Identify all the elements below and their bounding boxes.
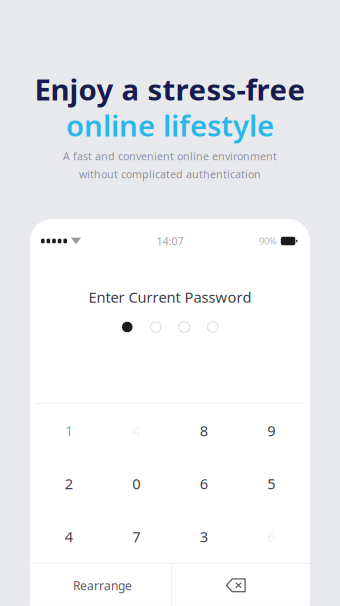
staticText: 2 (65, 474, 73, 493)
staticText: 7 (132, 527, 140, 546)
button[interactable]: 4 (35, 510, 102, 563)
staticText: 90% (259, 235, 277, 247)
staticText: 4 (65, 527, 73, 546)
button[interactable]: Rearrange (32, 564, 173, 606)
button[interactable]: 5 (237, 457, 305, 510)
button[interactable]: 3 (170, 510, 237, 563)
button[interactable]: Delete (167, 564, 305, 606)
staticText: 6 (200, 474, 208, 493)
button[interactable]: 1 (35, 404, 102, 457)
staticText: 14:07 (156, 234, 183, 248)
staticText: 0 (132, 474, 140, 493)
staticText: 9 (267, 421, 275, 440)
staticText: 4 (132, 421, 140, 440)
button[interactable]: 7 (102, 510, 170, 563)
staticText: 3 (200, 527, 208, 546)
button[interactable]: 2 (35, 457, 102, 510)
staticText: Enter Current Password (88, 287, 251, 307)
staticText: 6 (267, 527, 275, 546)
staticText: 8 (200, 421, 208, 440)
staticText: without complicated authentication (79, 167, 261, 181)
staticText: Rearrange (73, 577, 132, 593)
staticText: Enjoy a stress-free (34, 69, 305, 108)
staticText: 1 (65, 421, 73, 440)
button[interactable]: 6 (170, 457, 237, 510)
staticText: 5 (267, 474, 275, 493)
button[interactable]: 9 (237, 404, 305, 457)
button[interactable]: 8 (170, 404, 237, 457)
staticText: online lifestyle (66, 105, 274, 144)
button[interactable]: 0 (102, 457, 170, 510)
staticText: A fast and convenient online environment (63, 149, 277, 163)
